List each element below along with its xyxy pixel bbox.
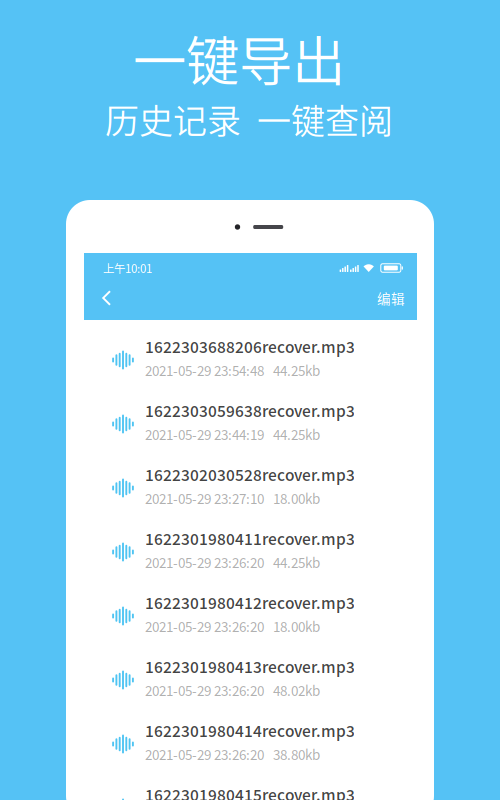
staticText: 1622301980412recover.mp3 (145, 591, 355, 613)
staticText: 2021-05-29 23:44:19 44.25kb (145, 424, 320, 444)
staticText: 2021-05-29 23:27:10 18.00kb (145, 488, 320, 508)
staticText: 一键导出 (133, 19, 345, 97)
staticText: 编辑 (377, 288, 405, 308)
button[interactable]: Back (96, 284, 118, 312)
button[interactable]: 编辑 (373, 284, 409, 312)
staticText: 1622301980414recover.mp3 (145, 719, 355, 741)
staticText: 1622301980411recover.mp3 (145, 527, 355, 549)
button[interactable]: 1622303059638recover.mp3 (84, 384, 417, 448)
button[interactable]: 1622301980414recover.mp3 (84, 704, 417, 768)
button[interactable]: 1622303688206recover.mp3 (84, 320, 417, 384)
staticText: 1622302030528recover.mp3 (145, 463, 355, 485)
button[interactable]: 1622301980412recover.mp3 (84, 576, 417, 640)
staticText: 2021-05-29 23:26:20 44.25kb (145, 552, 320, 572)
staticText: 1622303059638recover.mp3 (145, 399, 355, 421)
button[interactable]: 1622301980415recover.mp3 (84, 768, 417, 800)
staticText: 上午10:01 (103, 260, 152, 276)
button[interactable]: 1622301980413recover.mp3 (84, 640, 417, 704)
staticText: 1622301980413recover.mp3 (145, 655, 355, 677)
button[interactable]: 1622302030528recover.mp3 (84, 448, 417, 512)
staticText: 历史记录 一键查阅 (105, 94, 393, 144)
staticText: 2021-05-29 23:26:20 38.80kb (145, 744, 320, 764)
staticText: 1622301980415recover.mp3 (145, 783, 355, 800)
staticText: 2021-05-29 23:26:20 18.00kb (145, 616, 320, 636)
staticText: 2021-05-29 23:54:48 44.25kb (145, 360, 320, 380)
button[interactable]: 1622301980411recover.mp3 (84, 512, 417, 576)
staticText: 2021-05-29 23:26:20 48.02kb (145, 680, 320, 700)
staticText: 1622303688206recover.mp3 (145, 335, 355, 357)
